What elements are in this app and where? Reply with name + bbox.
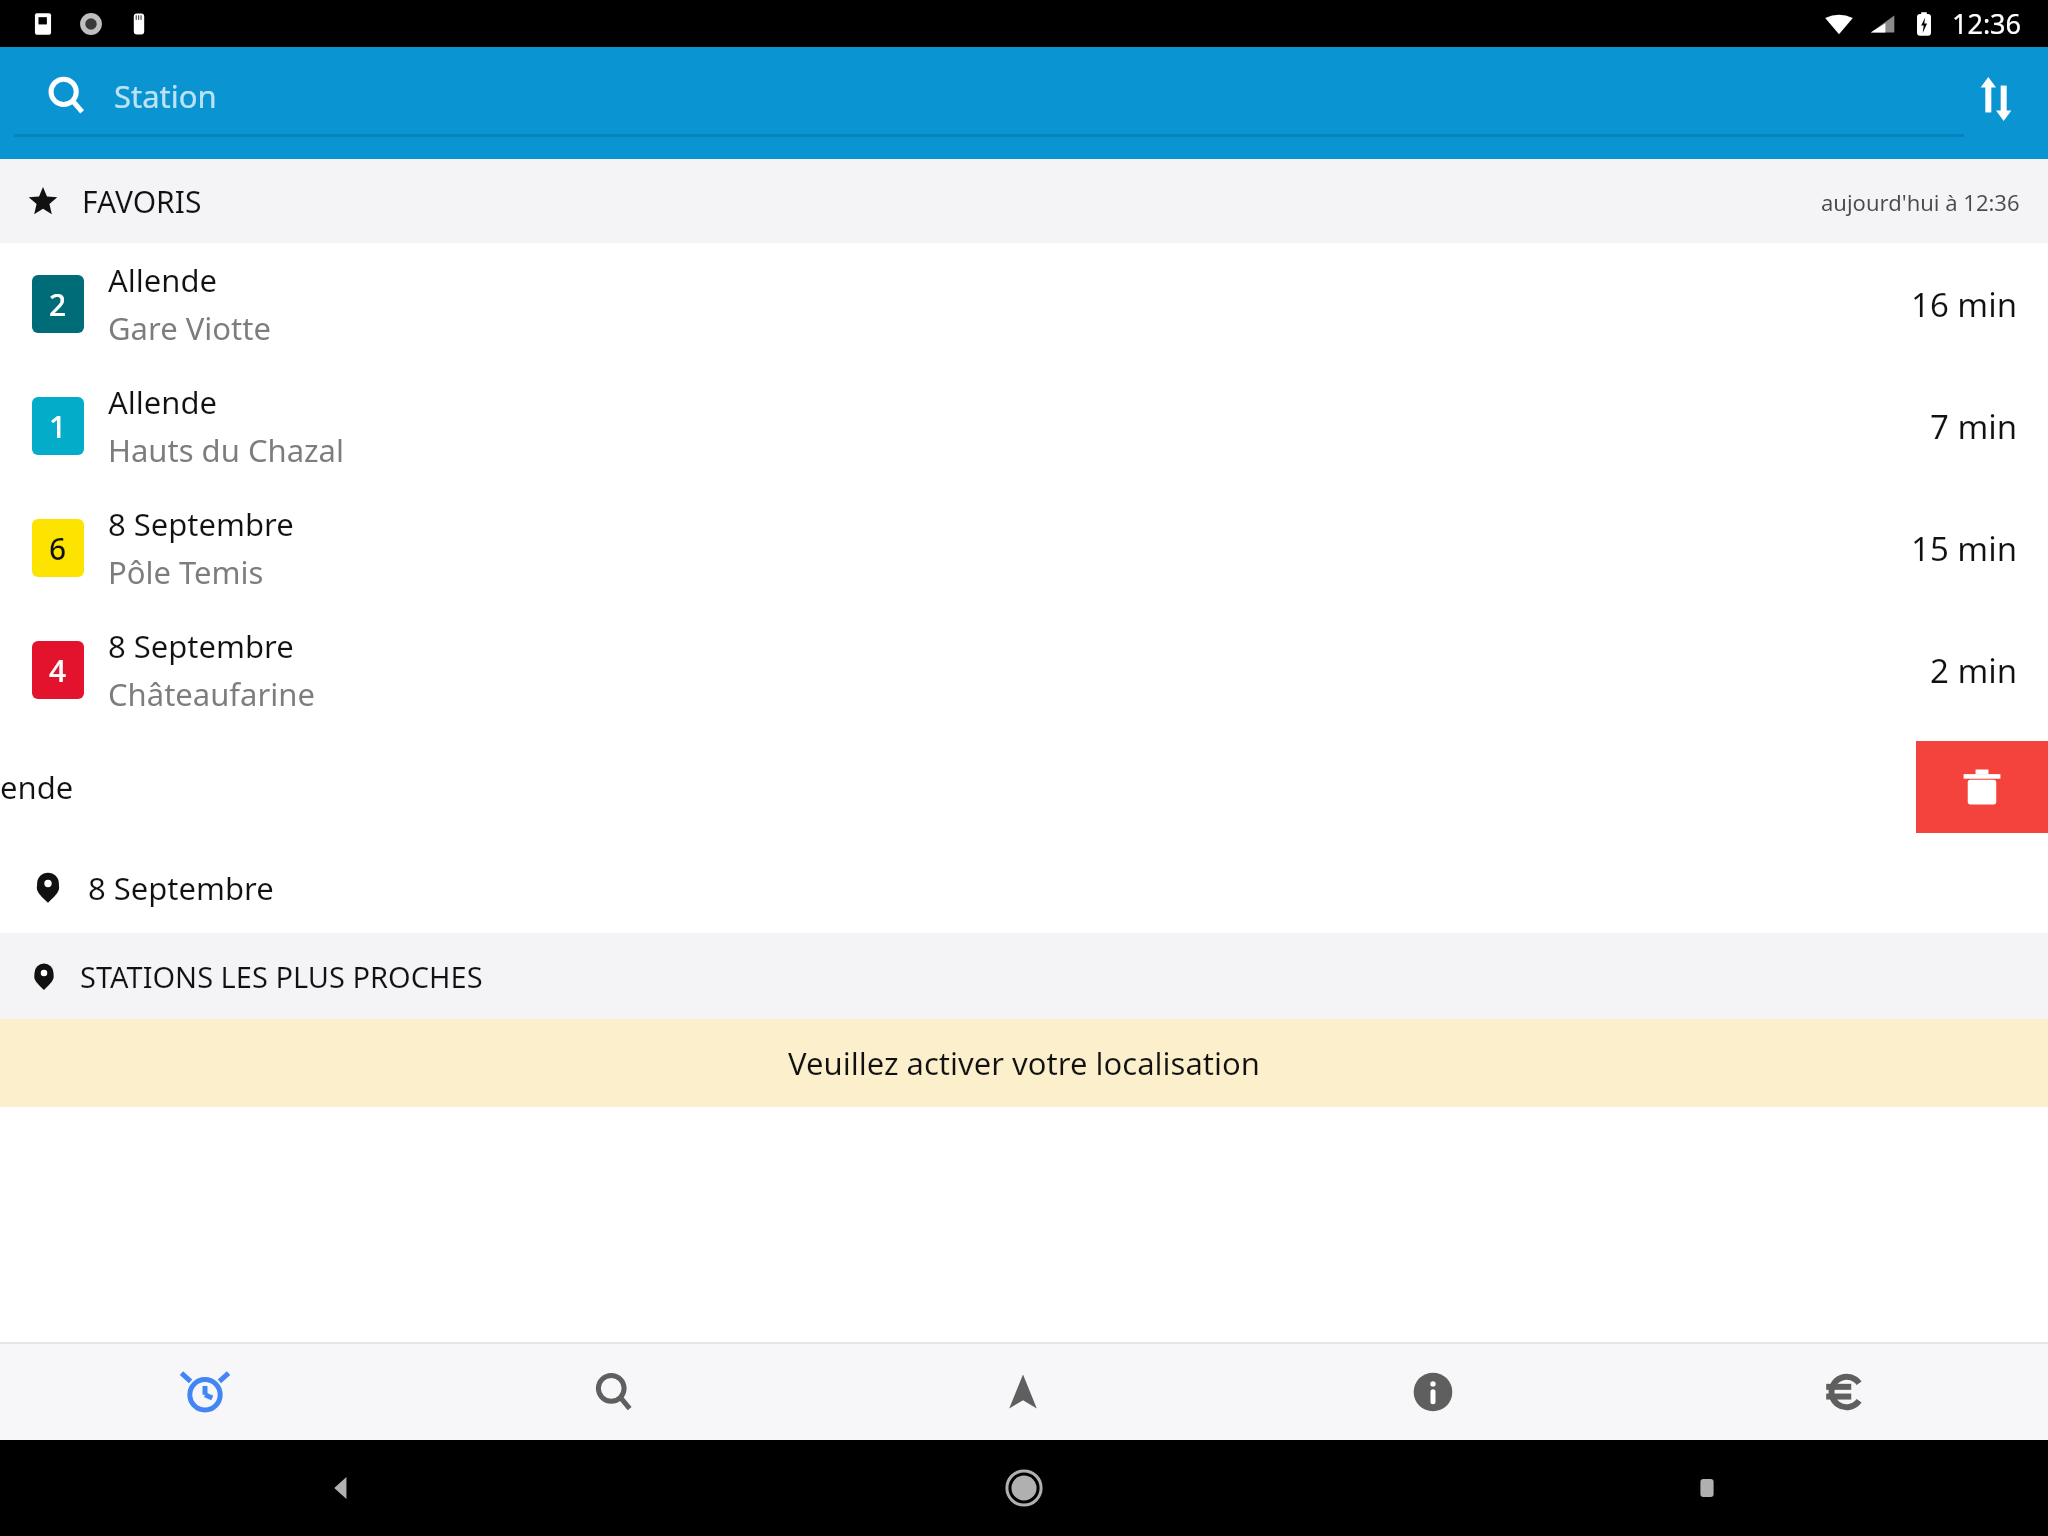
staticText: 15 min	[1911, 526, 2018, 571]
staticText: 7 min	[1930, 404, 2018, 449]
staticText: 8 Septembre	[108, 625, 294, 667]
button[interactable]: Station	[14, 58, 1964, 134]
staticText: 1	[49, 406, 67, 447]
button[interactable]: 2	[0, 243, 2048, 365]
staticText: 12:36	[1952, 5, 2022, 42]
staticText: 2 min	[1930, 648, 2018, 693]
button[interactable]: Departures	[0, 1344, 409, 1440]
staticText: Allende	[108, 381, 217, 423]
staticText: Gare Viotte	[108, 307, 271, 349]
button[interactable]: FAVORIS	[0, 159, 2048, 243]
button[interactable]: Home	[682, 1440, 1365, 1536]
button[interactable]: 1	[0, 365, 2048, 487]
staticText: lende	[0, 766, 74, 808]
staticText: 4	[49, 650, 67, 691]
staticText: aujourd'hui à 12:36	[1821, 187, 2020, 217]
staticText: STATIONS LES PLUS PROCHES	[80, 957, 483, 996]
button[interactable]: 8 Septembre	[0, 843, 2048, 933]
staticText: Pôle Temis	[108, 551, 264, 593]
button[interactable]: Back	[0, 1440, 682, 1536]
button[interactable]: Fares	[1638, 1344, 2048, 1440]
button[interactable]: Information	[1228, 1344, 1638, 1440]
button[interactable]: Recents	[1365, 1440, 2048, 1536]
staticText: 16 min	[1911, 282, 2018, 327]
staticText: 2	[49, 284, 67, 325]
staticText: 8 Septembre	[88, 867, 274, 909]
staticText: Hauts du Chazal	[108, 429, 345, 471]
button[interactable]: Swap direction	[1960, 63, 2032, 135]
staticText: 8 Septembre	[108, 503, 294, 545]
button[interactable]: Search	[409, 1344, 818, 1440]
button[interactable]: Navigate	[818, 1344, 1228, 1440]
staticText: Allende	[108, 259, 217, 301]
staticText: Châteaufarine	[108, 673, 315, 715]
staticText: Station	[114, 75, 217, 117]
staticText: 6	[49, 528, 67, 569]
button[interactable]: STATIONS LES PLUS PROCHES	[0, 933, 2048, 1019]
button[interactable]: Delete	[1916, 741, 2048, 833]
button[interactable]: 4	[0, 609, 2048, 731]
staticText: FAVORIS	[82, 181, 202, 222]
staticText: Veuillez activer votre localisation	[788, 1042, 1260, 1084]
button[interactable]: 6	[0, 487, 2048, 609]
